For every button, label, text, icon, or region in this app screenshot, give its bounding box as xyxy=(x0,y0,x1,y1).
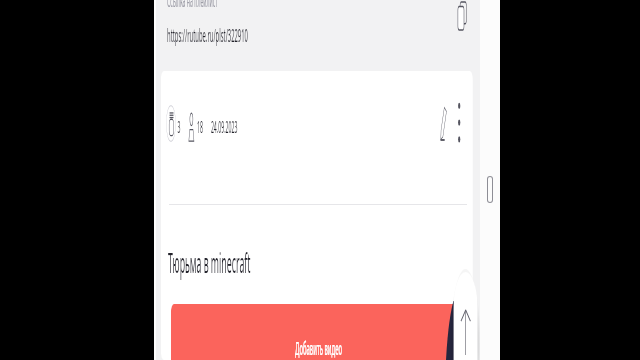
button[interactable]: More options xyxy=(455,103,463,145)
staticText: 3 xyxy=(177,116,181,138)
button[interactable]: Edit xyxy=(437,107,450,141)
button[interactable]: Добавить видео xyxy=(171,304,466,360)
staticText: Тюрьма в minecraft xyxy=(168,244,250,281)
staticText: 24.09.2023 xyxy=(211,116,237,138)
staticText: https://rutube.ru/plst/322910 xyxy=(167,23,248,48)
button[interactable]: Copy link xyxy=(453,1,471,31)
button[interactable]: Scroll to top xyxy=(453,272,478,360)
staticText: Ссылка на плейлист xyxy=(167,0,218,12)
staticText: 18 xyxy=(197,116,203,138)
staticText: Добавить видео xyxy=(295,336,342,360)
